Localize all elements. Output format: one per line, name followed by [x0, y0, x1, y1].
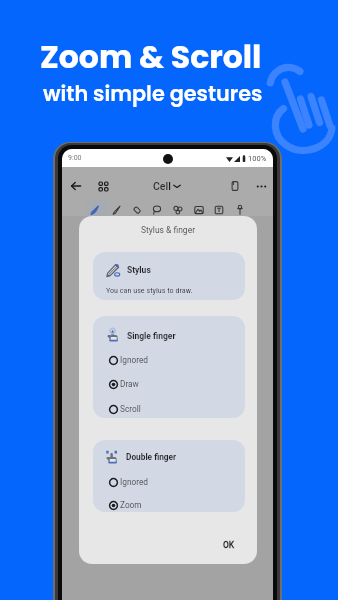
staticText: Cell — [153, 180, 171, 192]
button[interactable]: Document — [226, 177, 244, 195]
button[interactable]: OK — [216, 535, 242, 555]
button[interactable] — [93, 316, 245, 418]
staticText: 9:00 — [68, 154, 82, 162]
button[interactable]: Back — [67, 177, 85, 195]
button[interactable]: Pin — [232, 202, 248, 218]
button[interactable]: Text box — [211, 202, 227, 218]
button[interactable]: Lasso — [149, 202, 165, 218]
staticText: Stylus & finger — [79, 225, 257, 235]
staticText: You can use stylus to draw. — [106, 285, 193, 294]
button[interactable]: Zoom — [109, 494, 241, 516]
button[interactable]: More options — [252, 177, 270, 195]
button[interactable]: Cell — [153, 176, 181, 196]
button[interactable]: Draw — [109, 373, 241, 395]
staticText: Ignored — [120, 477, 149, 487]
button[interactable]: Eraser — [129, 202, 145, 218]
staticText: Zoom — [120, 500, 142, 510]
staticText: Draw — [120, 379, 139, 389]
staticText: Stylus — [127, 265, 151, 275]
button[interactable]: Scroll — [109, 398, 241, 420]
button[interactable]: Pen — [87, 202, 103, 218]
button[interactable]: Pencil — [109, 202, 125, 218]
staticText: 100% — [248, 154, 267, 163]
button[interactable]: Shapes — [170, 202, 186, 218]
staticText: with simple gestures — [43, 79, 263, 108]
staticText: Scroll — [120, 404, 141, 414]
staticText: OK — [223, 540, 235, 550]
staticText: Ignored — [120, 355, 149, 365]
button[interactable]: Grid view — [94, 177, 112, 195]
button[interactable]: Ignored — [109, 471, 241, 493]
button[interactable]: Ignored — [109, 349, 241, 371]
button[interactable] — [93, 440, 245, 512]
button[interactable] — [93, 252, 245, 300]
staticText: Single finger — [127, 331, 176, 341]
staticText: Double finger — [126, 452, 177, 462]
button[interactable]: Image — [191, 202, 207, 218]
staticText: Zoom & Scroll — [40, 35, 262, 79]
